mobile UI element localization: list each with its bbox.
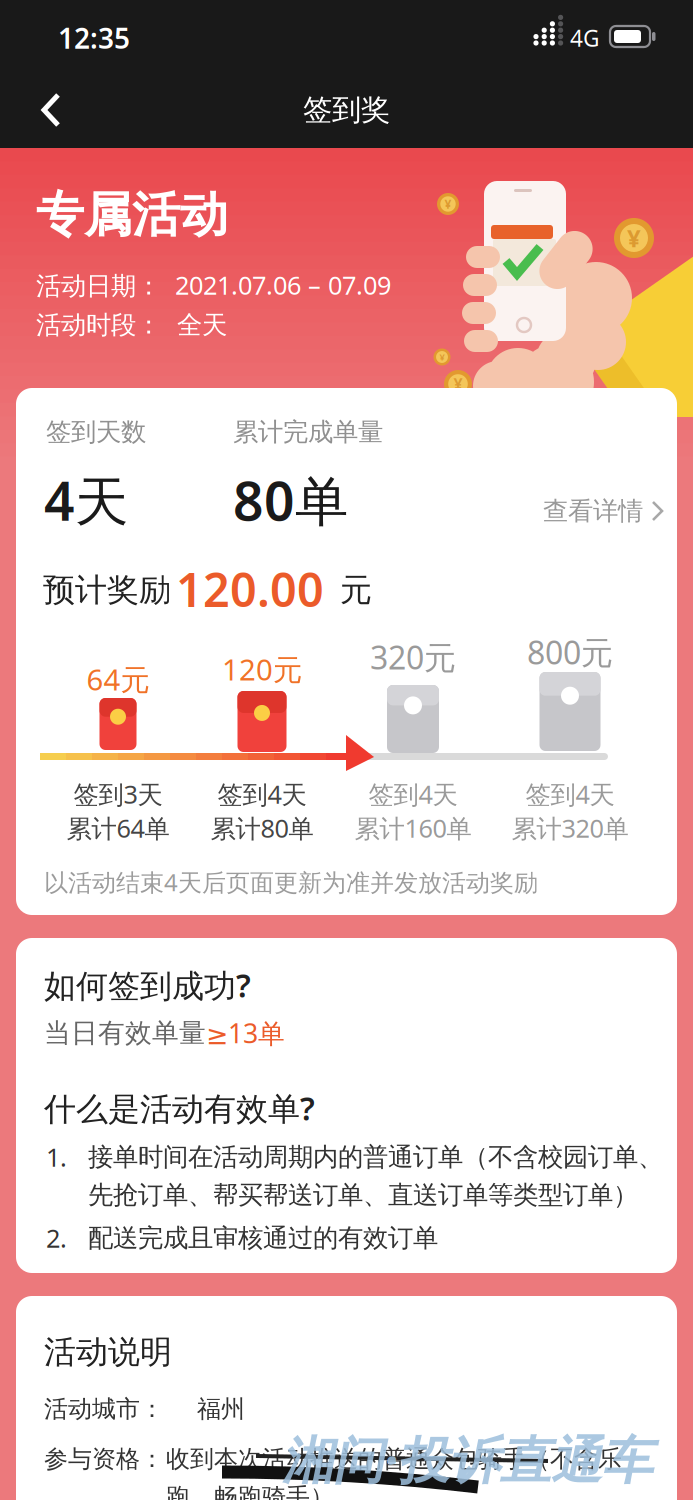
staticText: 以活动结束4天后页面更新为准并发放活动奖励 <box>44 866 538 898</box>
staticText: 跑、畅跑骑手） <box>166 1482 334 1500</box>
staticText: 120.00 <box>176 558 324 620</box>
staticText: 如何签到成功? <box>44 964 251 1006</box>
staticText: 活动说明 <box>44 1332 172 1372</box>
staticText: 签到3天 <box>73 777 162 811</box>
staticText: ¥ <box>439 351 444 363</box>
staticText: 签到4天 <box>217 777 306 811</box>
staticText: 收到本次活动推送的普通众包骑手（不含乐 <box>166 1444 622 1474</box>
staticText: 64元 <box>86 659 149 698</box>
staticText: 累计320单 <box>511 811 628 845</box>
staticText: 配送完成且审核通过的有效订单 <box>88 1222 438 1253</box>
staticText: 320元 <box>370 636 456 678</box>
staticText: 签到天数 <box>46 416 146 447</box>
button[interactable]: 查看详情 <box>543 495 665 526</box>
staticText: 查看详情 <box>543 495 643 526</box>
staticText: 4G <box>570 23 600 53</box>
staticText: 签到奖 <box>303 92 390 128</box>
staticText: 签到4天 <box>368 777 457 811</box>
staticText: ¥ <box>627 222 641 254</box>
staticText: 累计160单 <box>354 811 471 845</box>
staticText: 元 <box>340 570 372 610</box>
staticText: 签到4天 <box>525 777 614 811</box>
staticText: 活动日期： 2021.07.06 – 07.09 <box>36 268 391 302</box>
staticText: 预计奖励 <box>43 570 171 610</box>
staticText: 当日有效单量 <box>44 1017 206 1049</box>
staticText: ¥ <box>444 196 451 212</box>
staticText: 累计64单 <box>66 811 169 845</box>
staticText: 专属活动 <box>36 185 228 244</box>
staticText: 12:35 <box>58 19 130 57</box>
staticText: 先抢订单、帮买帮送订单、直送订单等类型订单） <box>88 1179 638 1210</box>
staticText: 4天 <box>44 465 128 535</box>
staticText: ¥ <box>453 373 462 395</box>
staticText: 什么是活动有效单? <box>44 1087 315 1129</box>
staticText: 120元 <box>222 649 302 688</box>
staticText: 累计80单 <box>210 811 313 845</box>
staticText: 接单时间在活动周期内的普通订单（不含校园订单、 <box>88 1141 663 1172</box>
staticText: 80单 <box>233 465 348 535</box>
staticText: 湘问·投诉直通车 <box>282 1425 653 1493</box>
staticText: 活动时段： 全天 <box>36 309 227 340</box>
staticText: 累计完成单量 <box>233 416 383 447</box>
staticText: 参与资格： <box>44 1444 164 1474</box>
button[interactable]: Back <box>30 85 74 135</box>
staticText: 活动城市： <box>44 1394 164 1424</box>
staticText: 福州 <box>197 1394 245 1424</box>
staticText: 800元 <box>527 631 613 673</box>
staticText: ≥13单 <box>206 1015 285 1051</box>
staticText: 2. <box>46 1221 67 1255</box>
staticText: 1. <box>46 1140 67 1174</box>
